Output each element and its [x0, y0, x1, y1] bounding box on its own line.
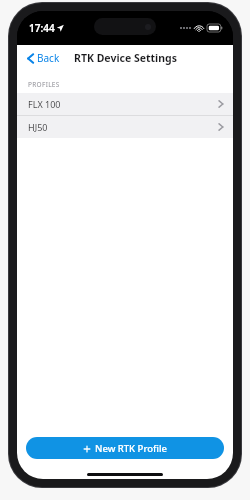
- other: Open HJ50: [218, 122, 224, 132]
- button[interactable]: Back: [24, 48, 63, 68]
- staticText: FLX 100: [28, 98, 61, 110]
- staticText: PROFILES: [28, 80, 60, 89]
- button[interactable]: HJ50: [17, 116, 233, 138]
- staticText: HJ50: [28, 121, 48, 133]
- other: Open FLX 100: [218, 99, 224, 109]
- staticText: RTK Device Settings: [74, 51, 177, 65]
- staticText: 17:44: [29, 21, 55, 35]
- staticText: New RTK Profile: [95, 442, 167, 455]
- button[interactable]: New RTK Profile: [26, 437, 224, 459]
- staticText: Back: [37, 51, 60, 65]
- button[interactable]: FLX 100: [17, 93, 233, 115]
